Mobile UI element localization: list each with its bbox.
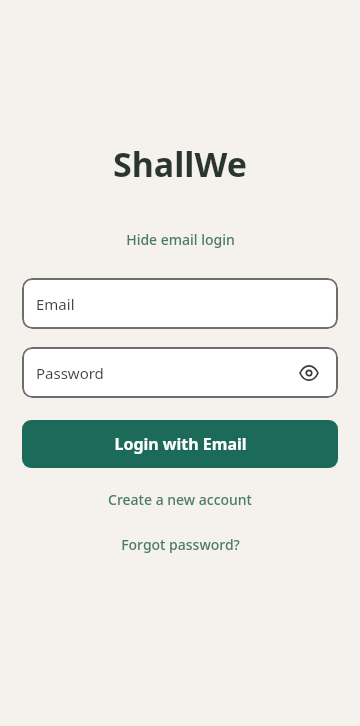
staticText: Password — [36, 363, 104, 383]
button[interactable]: Show password — [294, 358, 324, 388]
staticText: ShallWe — [113, 141, 247, 187]
button[interactable]: Hide email login — [120, 228, 241, 251]
staticText: Create a new account — [108, 490, 252, 509]
button[interactable]: Password — [22, 347, 338, 398]
staticText: Login with Email — [114, 433, 247, 455]
staticText: Forgot password? — [121, 535, 240, 554]
button[interactable]: Email — [22, 278, 338, 329]
staticText: Hide email login — [126, 230, 235, 249]
button[interactable]: Create a new account — [102, 488, 258, 511]
button[interactable]: Login with Email — [22, 420, 338, 468]
button[interactable]: Forgot password? — [115, 533, 246, 556]
staticText: Email — [36, 294, 75, 314]
